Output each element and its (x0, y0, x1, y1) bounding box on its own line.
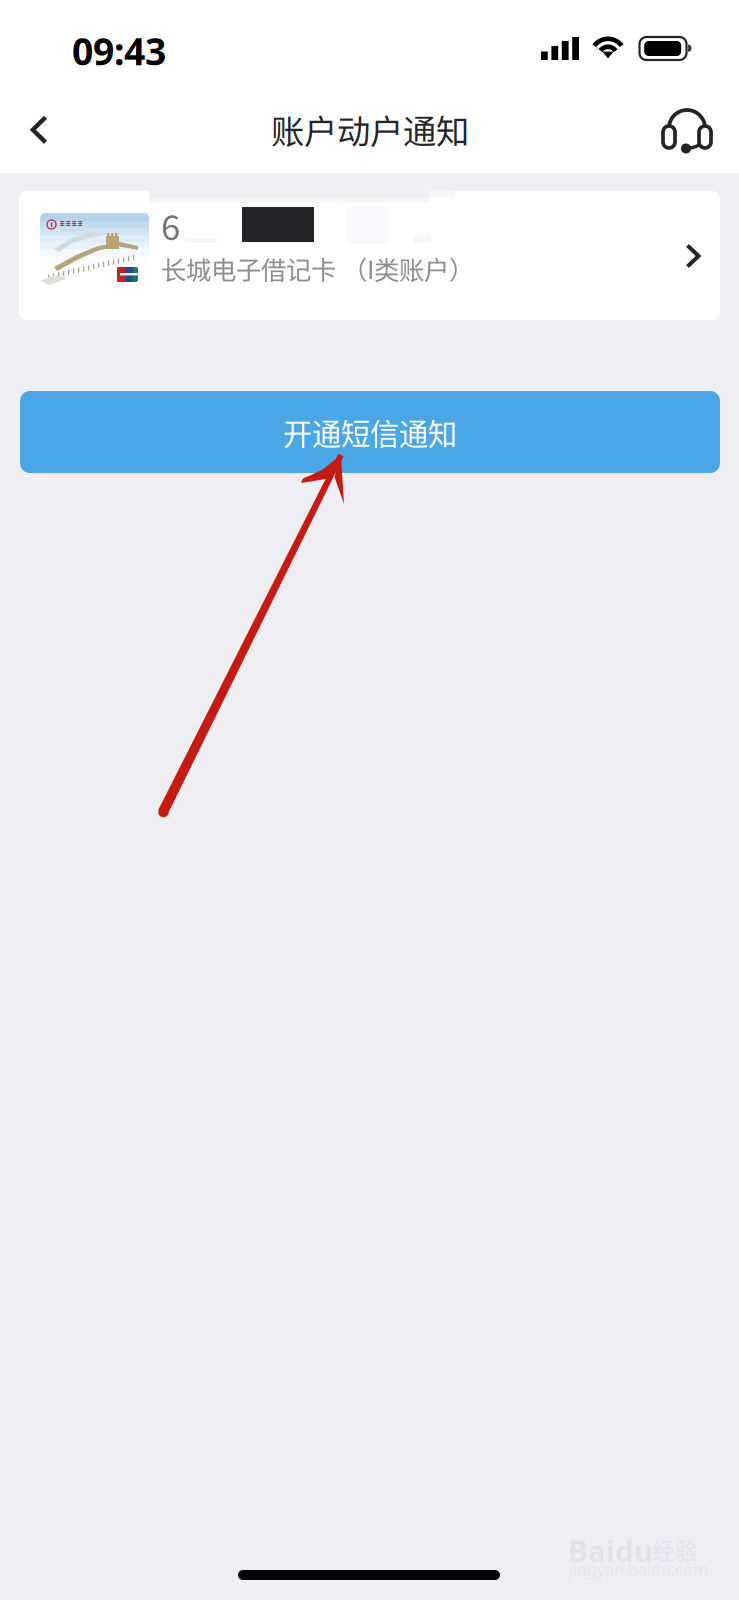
staticText: 6 (161, 200, 180, 250)
staticText: 长城电子借记卡 （I类账户） (161, 250, 474, 287)
button[interactable]: Customer service (652, 93, 724, 165)
staticText: 09:43 (72, 26, 166, 76)
staticText: 开通短信通知 (283, 411, 457, 453)
staticText: Baidu (568, 1531, 653, 1570)
button[interactable]: Back (3, 94, 75, 166)
staticText: jingyan.baidu.com (569, 1559, 708, 1580)
button[interactable]: 开通短信通知 (20, 391, 720, 473)
staticText: 经验 (652, 1533, 698, 1566)
staticText: 账户动户通知 (271, 105, 469, 153)
button[interactable]: 6 (19, 191, 720, 320)
